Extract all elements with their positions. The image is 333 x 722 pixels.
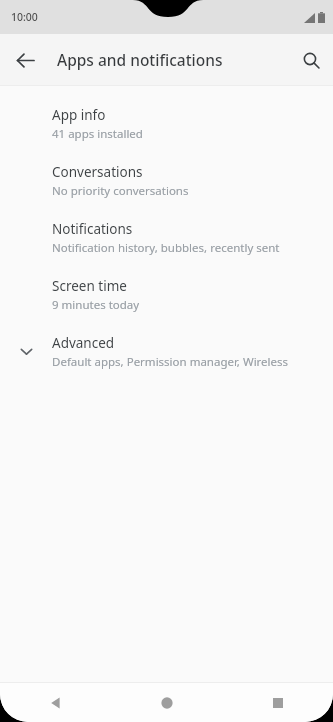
button[interactable]: App info: [0, 95, 333, 152]
staticText: Advanced: [52, 334, 115, 352]
staticText: Apps and notifications: [57, 49, 223, 70]
staticText: 41 apps installed: [52, 126, 143, 142]
staticText: No priority conversations: [52, 183, 189, 199]
button[interactable]: Search: [293, 42, 329, 78]
staticText: Notifications: [52, 220, 133, 238]
staticText: Screen time: [52, 277, 127, 295]
button[interactable]: Notifications: [0, 209, 333, 266]
staticText: 10:00: [11, 10, 38, 24]
button[interactable]: Back: [0, 683, 111, 722]
staticText: 9 minutes today: [52, 297, 140, 313]
staticText: Default apps, Permission manager, Wirele…: [52, 354, 323, 370]
staticText: Conversations: [52, 163, 143, 181]
button[interactable]: Conversations: [0, 152, 333, 209]
button[interactable]: Home: [111, 683, 222, 722]
button[interactable]: Advanced: [0, 323, 333, 380]
button[interactable]: Screen time: [0, 266, 333, 323]
staticText: Notification history, bubbles, recently …: [52, 240, 280, 256]
button[interactable]: Back: [7, 42, 43, 78]
button[interactable]: Recent apps: [222, 683, 333, 722]
staticText: App info: [52, 106, 106, 124]
